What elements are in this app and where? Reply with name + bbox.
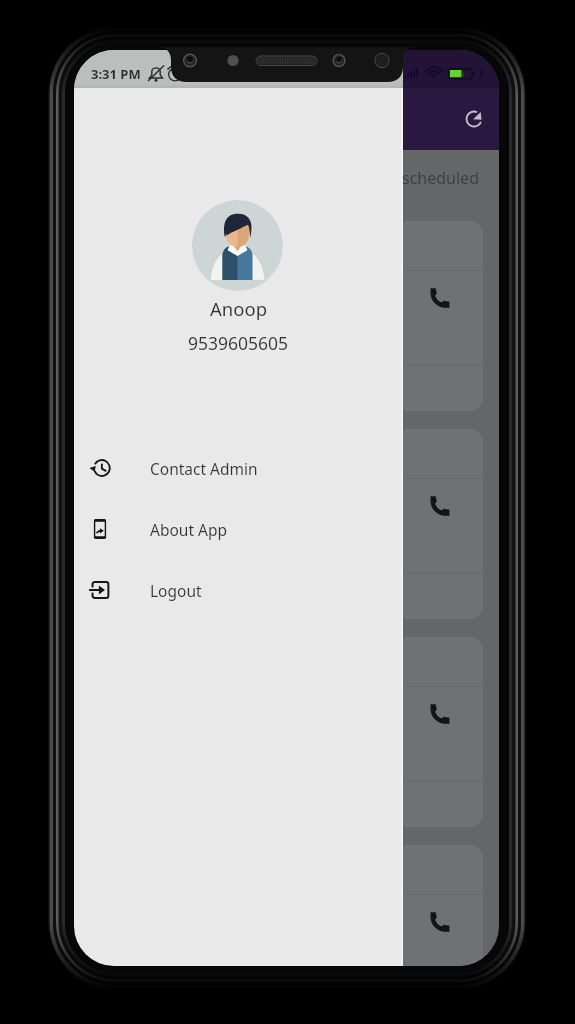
staticText: Contact Admin [150, 458, 258, 479]
button[interactable]: Contact Admin [74, 444, 403, 492]
staticText: 9539605605 [188, 331, 289, 355]
staticText: Anoop [210, 296, 268, 321]
staticText: Logout [150, 580, 202, 601]
button[interactable]: Refresh [452, 97, 496, 141]
button[interactable]: Profile photo [192, 200, 283, 291]
staticText: 49 [453, 68, 465, 82]
staticText: 3:31 PM [91, 65, 141, 83]
staticText: About App [150, 519, 227, 540]
staticText: scheduled [402, 167, 479, 189]
button[interactable]: Logout [74, 566, 403, 614]
button[interactable]: About App [74, 505, 403, 553]
